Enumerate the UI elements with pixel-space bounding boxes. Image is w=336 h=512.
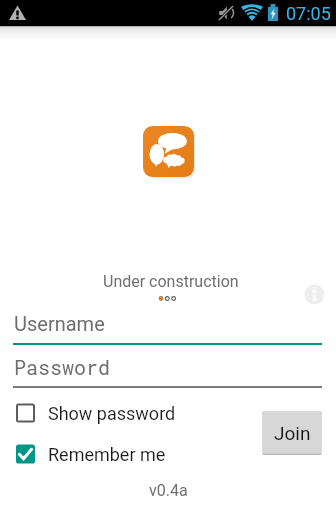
staticText: 07:05	[286, 3, 331, 24]
button[interactable]: Info	[304, 284, 325, 305]
button[interactable]: Password	[13, 346, 322, 389]
staticText: Show password	[48, 403, 176, 424]
staticText: Join	[274, 422, 311, 444]
staticText: Username	[14, 312, 105, 335]
staticText: v0.4a	[149, 481, 188, 500]
button[interactable]: Username	[13, 304, 322, 346]
button[interactable]: Join	[262, 411, 322, 455]
staticText: Remember me	[48, 444, 166, 465]
staticText: Password	[14, 354, 111, 380]
button[interactable]: Show password	[14, 400, 176, 426]
staticText: Under construction	[103, 272, 239, 291]
button[interactable]: Remember me	[14, 441, 166, 467]
